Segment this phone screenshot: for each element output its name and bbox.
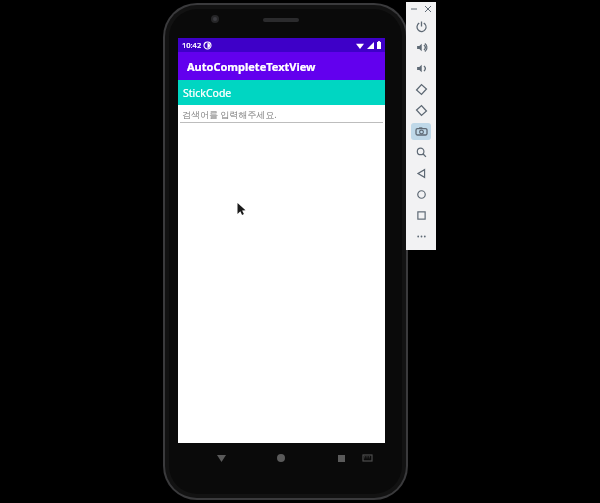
button[interactable]: Zoom xyxy=(411,144,431,161)
button[interactable]: Back xyxy=(214,451,228,465)
button[interactable]: Minimize xyxy=(409,4,419,14)
button[interactable]: Rotate right xyxy=(411,102,431,119)
button[interactable]: Recent apps xyxy=(334,451,348,465)
button[interactable]: Keyboard xyxy=(360,451,374,465)
button[interactable]: Rotate left xyxy=(411,81,431,98)
staticText: StickCode xyxy=(183,86,232,100)
button[interactable]: Home xyxy=(274,451,288,465)
button[interactable]: 검색어를 입력해주세요. xyxy=(178,105,385,123)
button[interactable]: AutoCompleteTextView xyxy=(178,52,385,80)
button[interactable]: Overview xyxy=(411,207,431,224)
staticText: 검색어를 입력해주세요. xyxy=(182,108,277,120)
button[interactable]: Back xyxy=(411,165,431,182)
button[interactable]: Volume down xyxy=(411,60,431,77)
button[interactable]: StickCode xyxy=(178,80,385,105)
button[interactable]: Volume up xyxy=(411,39,431,56)
staticText: AutoCompleteTextView xyxy=(187,59,316,74)
button[interactable]: Power xyxy=(411,18,431,35)
button[interactable]: More xyxy=(411,228,431,245)
button[interactable]: Close xyxy=(423,4,433,14)
button[interactable]: Take screenshot xyxy=(411,123,431,140)
staticText: 10:42 xyxy=(182,40,202,50)
button[interactable]: Home xyxy=(411,186,431,203)
